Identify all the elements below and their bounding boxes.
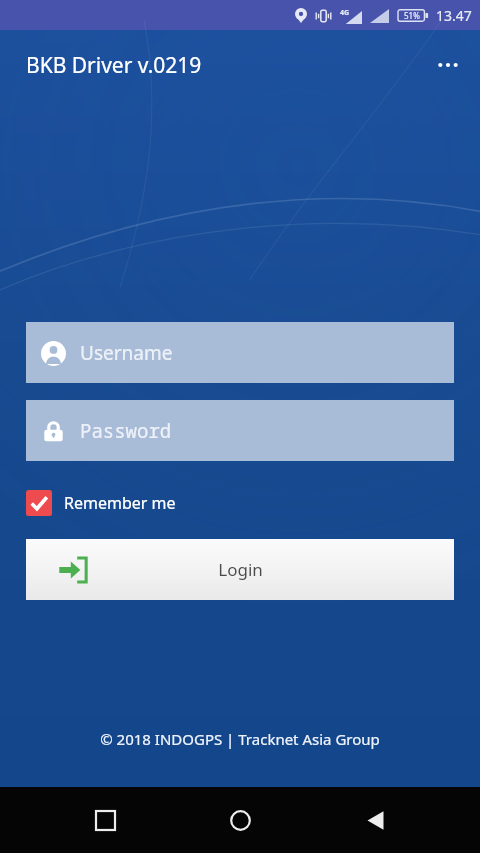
button[interactable]: Password [26,400,454,461]
staticText: Password [80,418,172,444]
staticText: 51% [404,10,420,21]
staticText: Login [218,558,263,581]
staticText: Remember me [64,492,176,514]
staticText: Username [80,340,173,366]
button[interactable]: Home [210,790,270,850]
button[interactable]: Username [26,322,454,383]
staticText: 4G [340,8,350,18]
button[interactable]: Login [26,539,454,600]
button[interactable]: More options [424,41,472,89]
staticText: BKB Driver v.0219 [26,51,202,80]
button[interactable]: Remember me [26,483,176,523]
staticText: 13.47 [436,6,472,25]
staticText: © 2018 INDOGPS | Tracknet Asia Group [100,729,380,749]
button[interactable]: Back [345,790,405,850]
button[interactable]: Recent apps [75,790,135,850]
